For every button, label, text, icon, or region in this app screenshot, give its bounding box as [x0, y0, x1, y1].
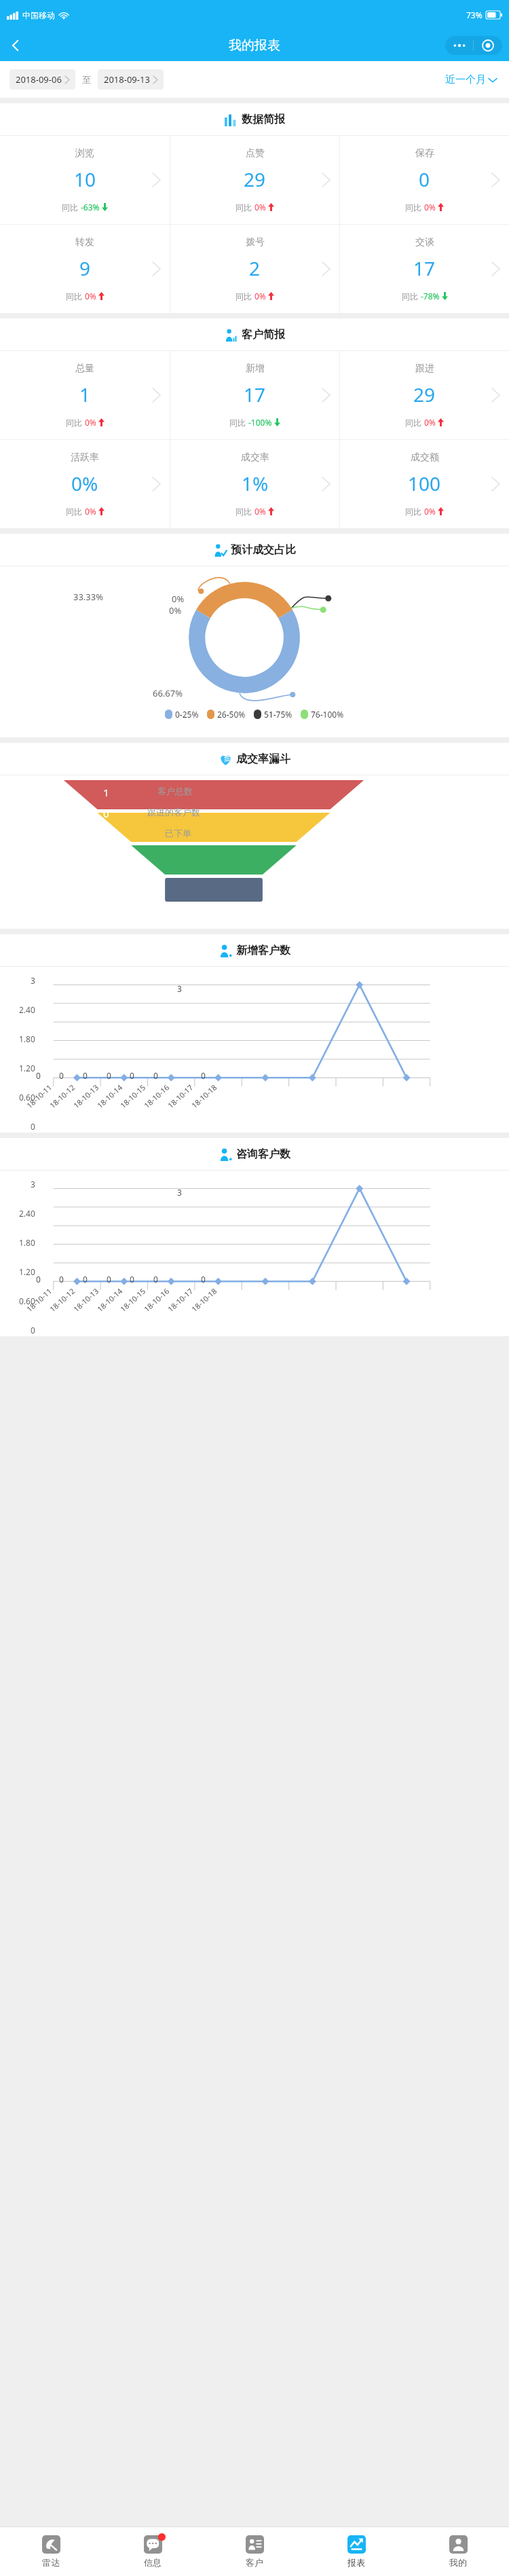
staticText: 3	[177, 983, 182, 994]
button[interactable]: Back	[0, 30, 31, 61]
staticText: 3	[177, 1187, 182, 1198]
staticText: 信息	[144, 2557, 162, 2568]
staticText: 客户总数	[157, 786, 193, 796]
button[interactable]: 拨号	[170, 225, 339, 313]
button[interactable]: Target	[474, 36, 502, 55]
staticText: 0	[130, 1070, 134, 1081]
staticText: 18-10-14	[95, 1082, 124, 1110]
staticText: 0	[36, 1070, 41, 1081]
button[interactable]: 转发	[0, 225, 170, 313]
staticText: 2.40	[19, 1208, 35, 1219]
staticText: 1.20	[19, 1063, 35, 1073]
staticText: 66.67%	[153, 687, 183, 699]
staticText: 18-10-16	[142, 1082, 171, 1110]
staticText: 客户简报	[242, 328, 285, 342]
staticText: 0	[201, 1070, 206, 1081]
staticText: 0	[59, 1274, 64, 1285]
button[interactable]: 跟进	[340, 351, 509, 439]
staticText: 0%	[424, 202, 436, 213]
staticText: 2.40	[19, 1004, 35, 1015]
staticText: 2018-09-13	[104, 73, 150, 86]
button[interactable]: 浏览	[0, 136, 170, 224]
staticText: 同比	[66, 291, 85, 301]
staticText: -78%	[421, 291, 440, 301]
staticText: 同比	[66, 417, 85, 428]
staticText: 18-10-11	[24, 1082, 54, 1110]
button[interactable]: 近一个月	[442, 71, 499, 89]
staticText: 0%	[172, 593, 185, 605]
staticText: 17	[413, 255, 436, 281]
staticText: 100	[408, 471, 441, 496]
staticText: 0	[201, 1274, 206, 1285]
staticText: 9	[79, 255, 91, 281]
button[interactable]: 新增	[170, 351, 339, 439]
staticText: 0	[83, 1274, 88, 1285]
staticText: 新增客户数	[236, 944, 290, 957]
staticText: 3	[31, 1179, 35, 1190]
button[interactable]: 2018-09-13	[98, 69, 164, 90]
staticText: 成交率漏斗	[236, 752, 290, 766]
staticText: 同比	[235, 291, 254, 301]
staticText: 雷达	[42, 2557, 60, 2568]
staticText: 18-10-17	[165, 1082, 195, 1110]
staticText: 76-100%	[311, 709, 344, 720]
button[interactable]: 成交额	[340, 440, 509, 528]
staticText: 18-10-18	[189, 1286, 219, 1314]
staticText: 0	[130, 1274, 134, 1285]
staticText: 0%	[85, 291, 96, 301]
staticText: 1	[79, 382, 91, 407]
staticText: 数据简报	[242, 113, 285, 126]
button[interactable]: 2018-09-06	[10, 69, 75, 90]
staticText: 同比	[402, 291, 421, 301]
button[interactable]: 总量	[0, 351, 170, 439]
staticText: 至	[82, 74, 91, 85]
staticText: 成交额	[411, 452, 439, 464]
staticText: 活跃率	[71, 452, 99, 464]
staticText: 转发	[75, 236, 94, 249]
staticText: 2018-09-06	[16, 73, 62, 86]
button[interactable]: More	[445, 36, 473, 55]
button[interactable]: 保存	[340, 136, 509, 224]
staticText: 同比	[235, 202, 254, 213]
staticText: 0	[107, 1274, 111, 1285]
staticText: 0	[31, 1121, 35, 1131]
button[interactable]: 交谈	[340, 225, 509, 313]
staticText: 18-10-13	[71, 1286, 101, 1314]
staticText: 客户	[246, 2557, 263, 2568]
staticText: 0%	[71, 471, 98, 496]
staticText: 18-10-11	[24, 1286, 54, 1314]
staticText: 0.60	[19, 1295, 35, 1306]
staticText: -100%	[248, 417, 272, 428]
staticText: 29	[413, 382, 436, 407]
staticText: 交谈	[415, 236, 434, 249]
button[interactable]: 报表	[305, 2527, 407, 2576]
staticText: 18-10-18	[189, 1082, 219, 1110]
button[interactable]: 客户	[204, 2527, 305, 2576]
staticText: 0%	[254, 291, 266, 301]
staticText: 0%	[85, 506, 96, 517]
staticText: 同比	[62, 202, 81, 213]
button[interactable]: 成交率	[170, 440, 339, 528]
staticText: 0.60	[19, 1092, 35, 1103]
staticText: 18-10-12	[47, 1286, 77, 1314]
staticText: 0	[419, 166, 430, 192]
staticText: 1%	[242, 471, 269, 496]
button[interactable]: 活跃率	[0, 440, 170, 528]
button[interactable]: 我的	[407, 2527, 509, 2576]
staticText: 18-10-16	[142, 1286, 171, 1314]
staticText: 拨号	[246, 236, 265, 249]
button[interactable]: 点赞	[170, 136, 339, 224]
button[interactable]: 雷达	[0, 2527, 102, 2576]
staticText: 51-75%	[264, 709, 293, 720]
button[interactable]: 信息	[102, 2527, 204, 2576]
staticText: 0%	[254, 202, 266, 213]
staticText: 2	[249, 255, 261, 281]
staticText: 0	[153, 1274, 158, 1285]
staticText: -63%	[81, 202, 100, 213]
staticText: 18-10-13	[71, 1082, 101, 1110]
staticText: 17	[244, 382, 266, 407]
staticText: 保存	[415, 147, 434, 160]
staticText: 0%	[424, 506, 436, 517]
staticText: 18-10-15	[118, 1286, 147, 1314]
